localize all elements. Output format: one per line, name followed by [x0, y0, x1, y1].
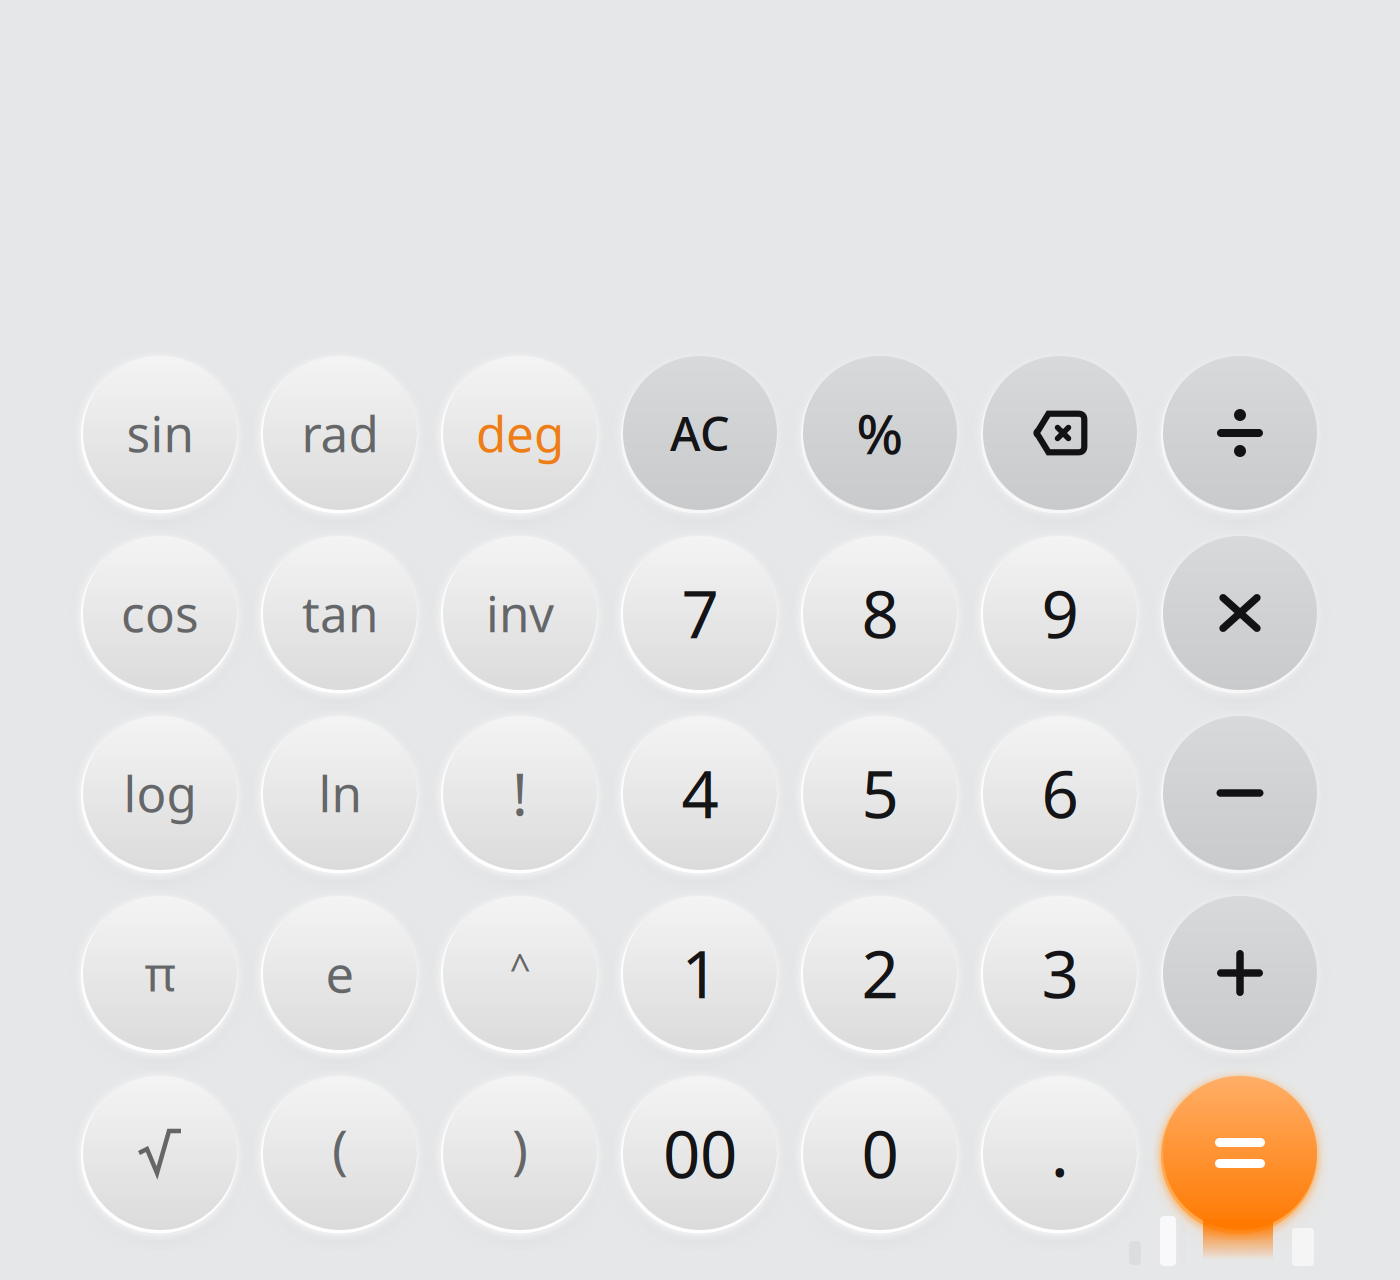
staticText: ^ [509, 942, 530, 992]
staticText: π [144, 941, 175, 1005]
staticText: tan [302, 580, 378, 646]
staticText: 0 [861, 1110, 898, 1196]
staticText: cos [121, 580, 199, 646]
button[interactable]: 7 [623, 536, 777, 690]
button[interactable]: sin [83, 356, 237, 510]
button[interactable]: 00 [623, 1076, 777, 1230]
button[interactable]: rad [263, 356, 417, 510]
button[interactable]: ! [443, 716, 597, 870]
button[interactable]: inv [443, 536, 597, 690]
button[interactable]: 2 [803, 896, 957, 1050]
staticText: rad [301, 400, 378, 466]
staticText: deg [476, 400, 564, 466]
button[interactable]: 3 [983, 896, 1137, 1050]
staticText: 00 [663, 1110, 737, 1196]
staticText: log [123, 760, 196, 826]
button[interactable]: ln [263, 716, 417, 870]
button[interactable]: ( [263, 1076, 417, 1230]
button[interactable]: Divide [1163, 356, 1317, 510]
button[interactable]: Plus [1163, 896, 1317, 1050]
button[interactable]: 8 [803, 536, 957, 690]
staticText: 4 [681, 750, 718, 836]
button[interactable]: ) [443, 1076, 597, 1230]
button[interactable]: Square root [83, 1076, 237, 1230]
staticText: . [1050, 1104, 1069, 1196]
staticText: 6 [1041, 750, 1078, 836]
button[interactable]: ^ [443, 896, 597, 1050]
button[interactable]: 0 [803, 1076, 957, 1230]
button[interactable]: 9 [983, 536, 1137, 690]
staticText: sin [126, 400, 193, 466]
staticText: inv [486, 580, 554, 646]
button[interactable]: π [83, 896, 237, 1050]
staticText: % [856, 397, 903, 469]
staticText: e [325, 939, 354, 1007]
button[interactable]: 4 [623, 716, 777, 870]
button[interactable]: Delete [983, 356, 1137, 510]
staticText: ! [512, 754, 528, 832]
staticText: 9 [1041, 570, 1078, 656]
button[interactable]: AC [623, 356, 777, 510]
staticText: 5 [861, 750, 898, 836]
button[interactable]: e [263, 896, 417, 1050]
button[interactable]: 5 [803, 716, 957, 870]
button[interactable]: deg [443, 356, 597, 510]
staticText: 7 [681, 570, 718, 656]
button[interactable]: Minus [1163, 716, 1317, 870]
staticText: ln [318, 760, 361, 826]
button[interactable]: Multiply [1163, 536, 1317, 690]
button[interactable]: % [803, 356, 957, 510]
staticText: 1 [681, 930, 718, 1016]
staticText: AC [670, 402, 730, 464]
staticText: 8 [861, 570, 898, 656]
staticText: 3 [1041, 930, 1078, 1016]
button[interactable]: . [983, 1076, 1137, 1230]
staticText: ) [512, 1113, 528, 1183]
button[interactable]: log [83, 716, 237, 870]
button[interactable]: 1 [623, 896, 777, 1050]
staticText: 2 [861, 930, 898, 1016]
button[interactable]: cos [83, 536, 237, 690]
button[interactable]: 6 [983, 716, 1137, 870]
button[interactable]: Equals [1163, 1076, 1317, 1230]
staticText: ( [332, 1113, 348, 1183]
button[interactable]: tan [263, 536, 417, 690]
